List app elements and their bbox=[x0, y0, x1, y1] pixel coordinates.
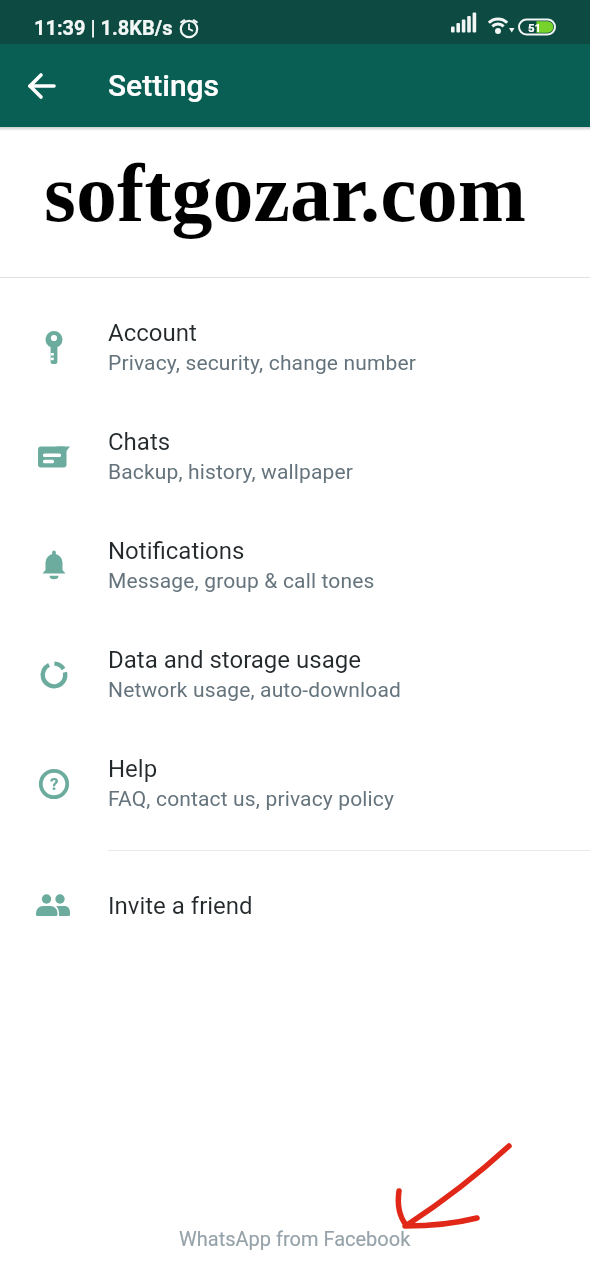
staticText: Help bbox=[108, 755, 158, 783]
staticText: WhatsApp from Facebook bbox=[179, 1227, 411, 1250]
staticText: ? bbox=[50, 774, 59, 794]
staticText: FAQ, contact us, privacy policy bbox=[108, 787, 395, 812]
staticText: Privacy, security, change number bbox=[108, 351, 417, 376]
staticText: Account bbox=[108, 319, 197, 347]
staticText: 11:39 | 1.8KB/s bbox=[34, 16, 173, 39]
staticText: Data and storage usage bbox=[108, 646, 361, 674]
button[interactable]: Data and storage usage bbox=[0, 620, 590, 729]
staticText: softgozar.com bbox=[44, 148, 526, 239]
staticText: Backup, history, wallpaper bbox=[108, 460, 354, 485]
button[interactable]: Invite a friend bbox=[0, 851, 590, 961]
button[interactable] bbox=[28, 72, 56, 100]
staticText: Message, group & call tones bbox=[108, 569, 375, 594]
staticText: Notifications bbox=[108, 537, 245, 565]
staticText: Settings bbox=[108, 68, 220, 103]
button[interactable]: Account bbox=[0, 293, 590, 402]
button[interactable]: Notifications bbox=[0, 511, 590, 620]
button[interactable]: ? bbox=[0, 729, 590, 838]
staticText: Chats bbox=[108, 428, 171, 456]
staticText: 51 bbox=[528, 21, 542, 34]
staticText: Invite a friend bbox=[108, 892, 253, 920]
button[interactable]: Chats bbox=[0, 402, 590, 511]
staticText: Network usage, auto-download bbox=[108, 678, 402, 703]
